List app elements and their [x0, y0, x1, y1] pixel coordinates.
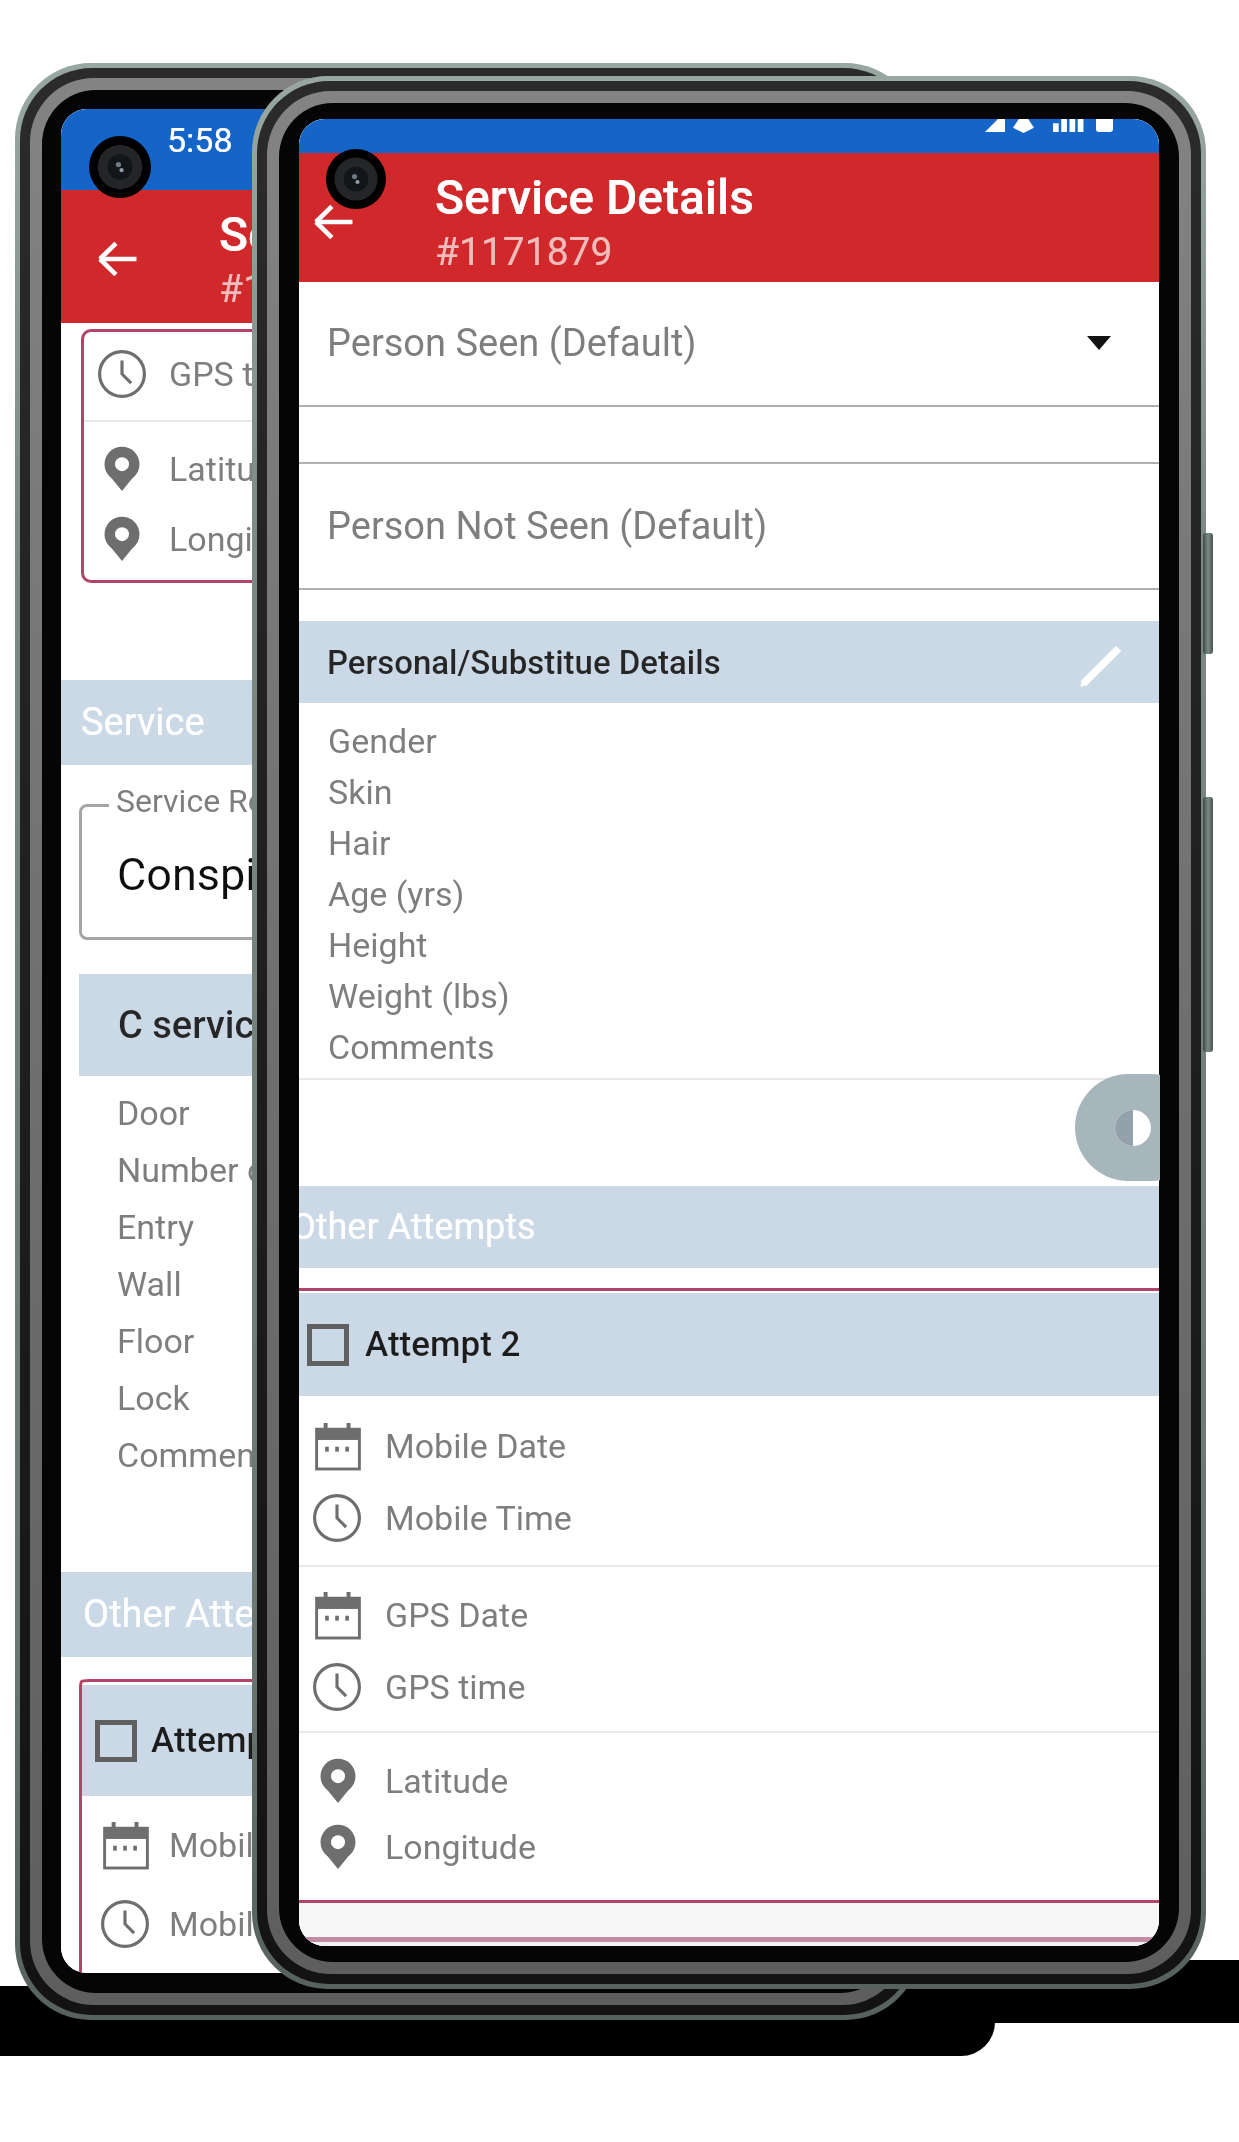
button[interactable]: Mobile Time: [79, 1894, 857, 1954]
button[interactable]: Expand: [1066, 310, 1132, 376]
button[interactable]: Longitude: [299, 1815, 1159, 1879]
staticText: Lock: [117, 1378, 190, 1418]
button[interactable]: Mobile Date: [79, 1815, 857, 1875]
staticText: Service Details: [435, 169, 754, 225]
button[interactable]: Other Attempts: [61, 1572, 875, 1657]
staticText: Personal/Substitue Details: [327, 643, 721, 682]
button[interactable]: Door: [79, 1084, 865, 1141]
button[interactable]: Weight (lbs): [299, 970, 1159, 1021]
staticText: Conspicuous: [117, 848, 379, 901]
button[interactable]: Edit: [1075, 640, 1127, 692]
button[interactable]: Personal/Substitue Details: [299, 621, 1159, 703]
staticText: GPS time: [385, 1667, 526, 1707]
button[interactable]: Hair: [299, 817, 1159, 868]
button[interactable]: Latitude: [299, 1747, 1159, 1815]
staticText: Mobile Date: [385, 1426, 567, 1466]
staticText: Person Seen (Default): [327, 321, 697, 366]
button[interactable]: Back: [85, 228, 151, 290]
button[interactable]: Height: [299, 919, 1159, 970]
button[interactable]: Longitude: [81, 509, 857, 569]
button[interactable]: Person Not Seen (Default): [299, 464, 1159, 588]
button[interactable]: Lock: [79, 1369, 865, 1426]
staticText: Latitude: [169, 449, 293, 489]
button[interactable]: Entry: [79, 1198, 865, 1255]
button[interactable]: Floor: [79, 1312, 865, 1369]
staticText: Comments: [328, 1027, 495, 1067]
button[interactable]: GPS Date: [299, 1579, 1159, 1651]
staticText: Number of: [117, 1150, 279, 1190]
staticText: Door: [117, 1093, 190, 1133]
button[interactable]: Mobile Date: [299, 1410, 1159, 1482]
button[interactable]: Number of: [79, 1141, 865, 1198]
staticText: 5:58: [167, 120, 233, 160]
staticText: GPS Date: [385, 1595, 529, 1635]
staticText: C service code: [118, 1003, 368, 1048]
staticText: Attempt 2: [365, 1324, 521, 1365]
staticText: Service Response: [116, 782, 369, 820]
button[interactable]: Contrast: [1075, 1074, 1160, 1181]
staticText: Age (yrs): [328, 874, 465, 914]
staticText: Entry: [117, 1207, 195, 1247]
staticText: Floor: [117, 1321, 195, 1361]
staticText: Person Not Seen (Default): [327, 504, 768, 549]
staticText: #1171879: [219, 266, 397, 312]
staticText: Mobile Date: [169, 1825, 351, 1865]
button[interactable]: Age (yrs): [299, 868, 1159, 919]
staticText: Weight (lbs): [328, 976, 510, 1016]
staticText: Longitude: [385, 1827, 536, 1867]
staticText: Skin: [328, 772, 393, 812]
staticText: Hair: [328, 823, 391, 863]
staticText: GPS time: [169, 354, 310, 394]
button[interactable]: Service: [61, 680, 875, 765]
button[interactable]: Comments: [299, 1021, 1159, 1072]
button[interactable]: Back: [301, 191, 367, 253]
button[interactable]: Attempt 1: [79, 1685, 857, 1796]
staticText: Service: [81, 700, 205, 745]
button[interactable]: Skin: [299, 766, 1159, 817]
button[interactable]: Other Attempts: [299, 1186, 1159, 1268]
button[interactable]: GPS time: [299, 1651, 1159, 1723]
staticText: Height: [328, 925, 428, 965]
button[interactable]: Person Seen (Default): [299, 282, 1159, 405]
staticText: Wall: [117, 1264, 182, 1304]
staticText: Mobile Time: [385, 1498, 572, 1538]
staticText: Service Details: [219, 206, 538, 262]
staticText: Other Attempts: [83, 1592, 342, 1637]
button[interactable]: Wall: [79, 1255, 865, 1312]
button[interactable]: GPS time: [81, 344, 857, 404]
staticText: #1171879: [435, 229, 613, 275]
button[interactable]: Comments: [79, 1426, 865, 1483]
button[interactable]: Gender: [299, 715, 1159, 766]
button[interactable]: Mobile Time: [299, 1482, 1159, 1554]
staticText: Mobile Time: [169, 1904, 356, 1944]
button[interactable]: Latitude: [81, 439, 857, 499]
button[interactable]: C service code: [79, 974, 865, 1076]
staticText: Comments: [117, 1435, 284, 1475]
staticText: Attempt 1: [151, 1720, 307, 1761]
staticText: Other Attempts: [299, 1206, 536, 1248]
staticText: Latitude: [385, 1761, 509, 1801]
staticText: Gender: [328, 721, 437, 761]
staticText: Longitude: [169, 519, 320, 559]
button[interactable]: Attempt 2: [299, 1293, 1159, 1396]
